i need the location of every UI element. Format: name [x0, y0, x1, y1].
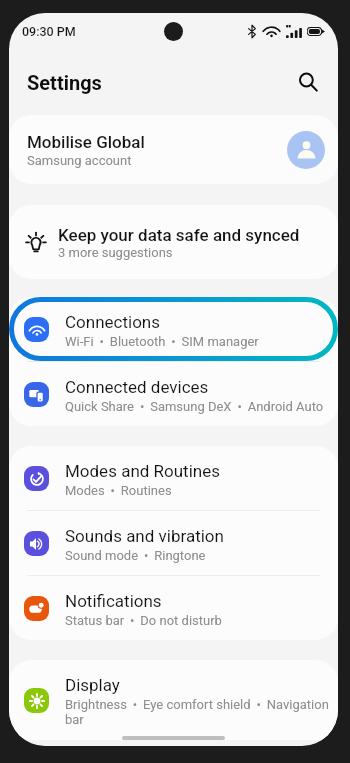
staticText: Sound mode • Ringtone: [65, 548, 206, 563]
staticText: Samsung account: [27, 153, 132, 168]
staticText: Notifications: [65, 591, 162, 611]
button[interactable]: Display: [9, 660, 338, 740]
staticText: Connections: [65, 312, 161, 332]
button[interactable]: Notifications: [9, 576, 338, 640]
button[interactable]: Search: [289, 63, 327, 101]
button[interactable]: Connections: [9, 297, 338, 361]
staticText: Mobilise Global: [27, 132, 145, 152]
staticText: Sounds and vibration: [65, 526, 224, 546]
button[interactable]: Mobilise Global: [9, 115, 338, 184]
staticText: Display: [65, 675, 120, 695]
staticText: Modes and Routines: [65, 461, 220, 481]
staticText: Keep your data safe and synced: [58, 225, 300, 245]
staticText: Brightness • Eye comfort shield • Naviga…: [65, 697, 330, 727]
staticText: Wi-Fi • Bluetooth • SIM manager: [65, 334, 259, 349]
staticText: 09:30 PM: [22, 24, 76, 39]
button[interactable]: Keep your data safe and synced: [9, 205, 338, 279]
button[interactable]: Connected devices: [9, 362, 338, 426]
staticText: Modes • Routines: [65, 483, 172, 498]
button[interactable]: Sounds and vibration: [9, 511, 338, 575]
staticText: Settings: [27, 71, 102, 94]
staticText: Quick Share • Samsung DeX • Android Auto: [65, 399, 324, 414]
button[interactable]: Modes and Routines: [9, 446, 338, 510]
staticText: Connected devices: [65, 377, 209, 397]
staticText: Status bar • Do not disturb: [65, 613, 222, 628]
staticText: 3 more suggestions: [58, 245, 173, 260]
